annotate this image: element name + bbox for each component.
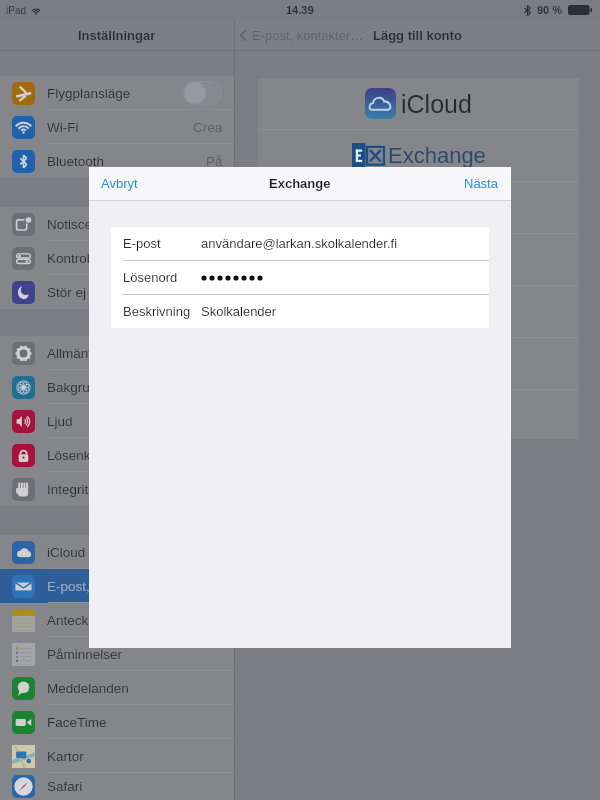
staticText: Wi-Fi: [47, 120, 79, 135]
button[interactable]: E-post: [111, 227, 489, 260]
button[interactable]: iCloud: [0, 535, 234, 569]
button[interactable]: Integrit: [0, 472, 234, 506]
staticText: Allmänt: [47, 346, 93, 361]
button[interactable]: Google: [258, 182, 579, 233]
button[interactable]: Safari: [0, 773, 234, 800]
button[interactable]: Wi-Fi: [0, 110, 234, 144]
staticText: Notisce: [47, 217, 93, 232]
staticText: Skolkalender: [201, 304, 277, 319]
button[interactable]: Tillbaka till E-post, kontakter: [235, 22, 368, 49]
staticText: Påminnelser: [47, 647, 123, 662]
staticText: E-post, kontakter…: [252, 28, 364, 43]
button[interactable]: AOL: [258, 286, 579, 337]
button[interactable]: Yahoo!: [258, 234, 579, 285]
button[interactable]: Exchange: [258, 130, 579, 181]
staticText: FaceTime: [47, 715, 107, 730]
staticText: 14.39: [286, 4, 314, 16]
button[interactable]: FaceTime: [0, 705, 234, 739]
staticText: Anteckn: [47, 613, 96, 628]
button[interactable]: Kartor: [0, 739, 234, 773]
button[interactable]: Stör ej: [0, 275, 234, 309]
staticText: Kartor: [47, 749, 84, 764]
button[interactable]: Allmänt: [0, 336, 234, 370]
button[interactable]: Flygplansläge på/av: [183, 81, 222, 105]
staticText: Bluetooth: [47, 154, 105, 169]
staticText: Kontroll: [47, 251, 93, 266]
staticText: E-post,: [47, 579, 90, 594]
staticText: Bakgru: [47, 380, 90, 395]
button[interactable]: Avbryt: [89, 170, 150, 197]
button[interactable]: Påminnelser: [0, 637, 234, 671]
staticText: 90 %: [537, 4, 563, 16]
staticText: Inställningar: [78, 28, 156, 43]
staticText: Integrit: [47, 482, 89, 497]
button[interactable]: Beskrivning: [111, 295, 489, 328]
staticText: iCloud: [47, 545, 86, 560]
button[interactable]: Ljud: [0, 404, 234, 438]
staticText: Exchange: [388, 143, 486, 168]
staticText: Safari: [47, 779, 83, 794]
staticText: Avbryt: [101, 176, 138, 191]
button[interactable]: Bluetooth: [0, 144, 234, 178]
staticText: användare@larkan.skolkalender.fi: [201, 236, 398, 251]
staticText: E-post: [123, 236, 161, 251]
button[interactable]: Flygplansläge: [0, 76, 234, 110]
button[interactable]: Bakgru: [0, 370, 234, 404]
button[interactable]: Lösenord: [111, 261, 489, 294]
button[interactable]: Meddelanden: [0, 671, 234, 705]
staticText: På: [206, 154, 223, 169]
staticText: Ljud: [47, 414, 73, 429]
staticText: Crea: [193, 120, 223, 135]
staticText: Lösenord: [123, 270, 178, 285]
button[interactable]: Notisce: [0, 207, 234, 241]
staticText: Beskrivning: [123, 304, 191, 319]
staticText: iCloud: [401, 90, 472, 118]
button[interactable]: Annat: [258, 390, 579, 439]
staticText: Flygplansläge: [47, 86, 131, 101]
button[interactable]: Lösenk: [0, 438, 234, 472]
staticText: Exchange: [269, 176, 331, 191]
staticText: Lägg till konto: [373, 28, 462, 43]
staticText: iPad: [6, 5, 27, 16]
button[interactable]: Anteckn: [0, 603, 234, 637]
staticText: Lösenk: [47, 448, 91, 463]
staticText: Stör ej: [47, 285, 87, 300]
button[interactable]: iCloud: [258, 78, 579, 129]
staticText: Meddelanden: [47, 681, 129, 696]
button[interactable]: Kontroll: [0, 241, 234, 275]
button[interactable]: Outlook.com: [258, 338, 579, 389]
staticText: Nästa: [464, 176, 498, 191]
button[interactable]: Nästa: [452, 170, 511, 197]
button[interactable]: E-post,: [0, 569, 234, 603]
